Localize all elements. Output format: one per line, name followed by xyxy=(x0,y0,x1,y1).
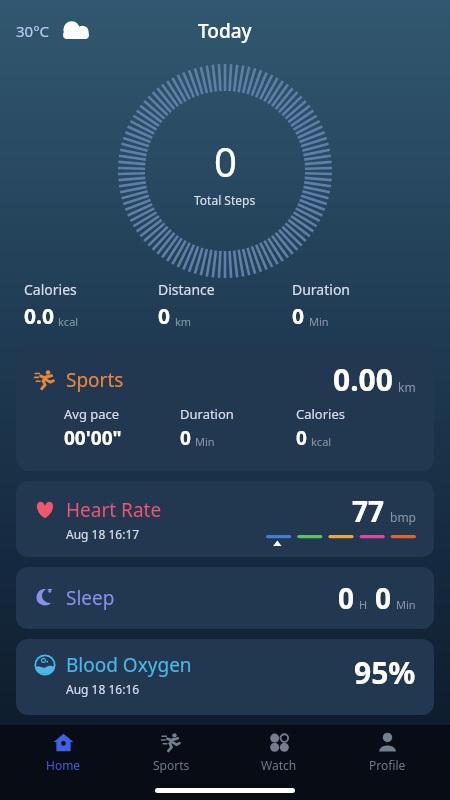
button[interactable]: Blood Oxygen xyxy=(16,639,434,715)
other: Profile xyxy=(377,732,398,753)
staticText: Sports xyxy=(153,757,190,773)
button[interactable]: Heart Rate xyxy=(16,481,434,557)
button[interactable]: Sports xyxy=(126,732,216,773)
staticText: 0 xyxy=(180,425,191,451)
staticText: 0 xyxy=(296,425,307,451)
staticText: Duration xyxy=(292,280,351,299)
staticText: 0 xyxy=(338,579,355,617)
staticText: Min xyxy=(195,434,215,449)
staticText: 0.00 xyxy=(333,359,393,400)
staticText: Sleep xyxy=(66,585,115,611)
staticText: 0 xyxy=(292,302,305,331)
staticText: 0.0 xyxy=(24,302,54,331)
staticText: Home xyxy=(46,757,81,773)
staticText: Today xyxy=(198,18,252,44)
button[interactable]: Sports xyxy=(16,345,434,471)
staticText: 0 xyxy=(158,302,171,331)
staticText: bmp xyxy=(390,509,416,525)
staticText: km xyxy=(398,379,416,395)
staticText: Sports xyxy=(66,367,124,393)
button[interactable]: Profile xyxy=(342,732,432,773)
button[interactable]: Sleep xyxy=(16,567,434,629)
staticText: Calories xyxy=(296,405,346,423)
staticText: Duration xyxy=(180,405,234,423)
staticText: Blood Oxygen xyxy=(66,652,192,678)
staticText: Total Steps xyxy=(194,192,256,208)
staticText: Watch xyxy=(261,757,297,773)
staticText: 0 xyxy=(375,579,392,617)
staticText: Calories xyxy=(24,280,77,299)
button[interactable]: Watch xyxy=(234,732,324,773)
staticText: 77 xyxy=(352,492,385,530)
staticText: Min xyxy=(309,314,329,329)
staticText: Distance xyxy=(158,280,215,299)
staticText: Profile xyxy=(369,757,406,773)
staticText: 00'00" xyxy=(64,425,122,451)
staticText: kcal xyxy=(311,434,332,449)
staticText: 30°C xyxy=(16,21,50,41)
staticText: H xyxy=(359,597,368,612)
staticText: kcal xyxy=(58,314,79,329)
other: Home xyxy=(53,732,74,753)
button[interactable]: Home xyxy=(18,732,108,773)
staticText: km xyxy=(175,314,192,329)
staticText: Avg pace xyxy=(64,405,120,423)
other: Watch xyxy=(269,732,290,753)
staticText: Heart Rate xyxy=(66,497,162,523)
staticText: Aug 18 16:17 xyxy=(66,526,140,542)
staticText: 0 xyxy=(214,134,237,188)
staticText: Min xyxy=(396,597,416,612)
staticText: 95% xyxy=(354,652,416,693)
staticText: Aug 18 16:16 xyxy=(66,681,140,697)
other: Sports xyxy=(161,732,182,753)
